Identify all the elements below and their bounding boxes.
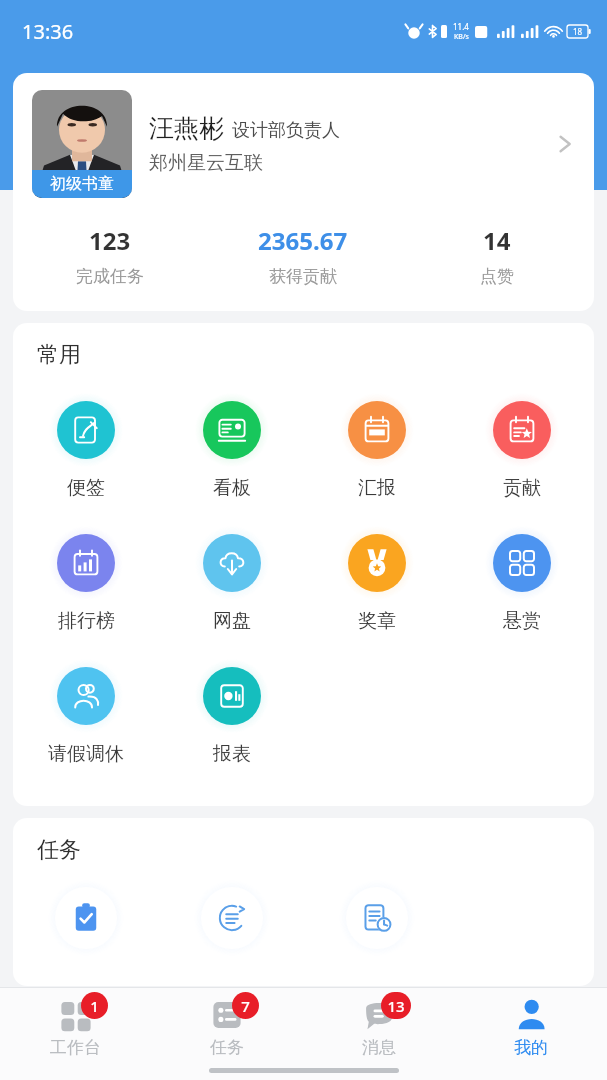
button[interactable]: 7	[151, 988, 303, 1080]
button[interactable]: 贡献	[449, 391, 594, 502]
button[interactable]: 请假调休	[13, 657, 159, 768]
staticText: 任务	[210, 1037, 244, 1058]
button[interactable]: 1	[0, 988, 151, 1080]
staticText: 1	[90, 996, 99, 1016]
button[interactable]: 报表	[159, 657, 304, 768]
staticText: 我的	[514, 1037, 548, 1058]
button[interactable]: 奖章	[304, 524, 449, 635]
button[interactable]: 网盘	[159, 524, 304, 635]
button[interactable]: 任务	[304, 880, 449, 956]
button[interactable]: 汇报	[304, 391, 449, 502]
staticText: 便签	[67, 476, 105, 500]
staticText: 报表	[213, 742, 251, 766]
button[interactable]: 看板	[159, 391, 304, 502]
staticText: 贡献	[503, 476, 541, 500]
staticText: 常用	[37, 341, 81, 369]
staticText: 汇报	[358, 476, 396, 500]
staticText: 13	[387, 996, 405, 1016]
staticText: 7	[241, 996, 250, 1016]
button[interactable]: 悬赏	[449, 524, 594, 635]
staticText: 请假调休	[48, 742, 124, 766]
button[interactable]: 我的	[455, 988, 607, 1080]
staticText: 任务	[37, 836, 81, 864]
staticText: 奖章	[358, 609, 396, 633]
staticText: 排行榜	[58, 609, 115, 633]
button[interactable]: 任务	[159, 880, 304, 956]
staticText: 郑州星云互联	[149, 151, 263, 175]
staticText: 13:36	[22, 18, 74, 45]
staticText: 点赞	[480, 266, 514, 287]
staticText: 初级书童	[50, 174, 114, 194]
button[interactable]: 便签	[13, 391, 159, 502]
staticText: KB/s	[454, 32, 469, 42]
staticText: 看板	[213, 476, 251, 500]
staticText: 汪燕彬	[149, 113, 224, 144]
staticText: 123	[89, 224, 131, 257]
staticText: 设计部负责人	[232, 119, 340, 142]
button[interactable]: 初级书童	[13, 73, 594, 311]
staticText: 网盘	[213, 609, 251, 633]
staticText: 完成任务	[76, 266, 144, 287]
button[interactable]: 13	[303, 988, 455, 1080]
staticText: 14	[483, 224, 511, 257]
staticText: 18	[573, 26, 583, 37]
button[interactable]: 排行榜	[13, 524, 159, 635]
button[interactable]: 任务	[13, 880, 159, 956]
staticText: 工作台	[50, 1037, 101, 1058]
staticText: 11.4	[453, 21, 469, 32]
staticText: 悬赏	[503, 609, 541, 633]
staticText: 获得贡献	[269, 266, 337, 287]
staticText: 2365.67	[258, 224, 348, 257]
other: 查看个人资料	[552, 131, 578, 157]
staticText: 消息	[362, 1037, 396, 1058]
